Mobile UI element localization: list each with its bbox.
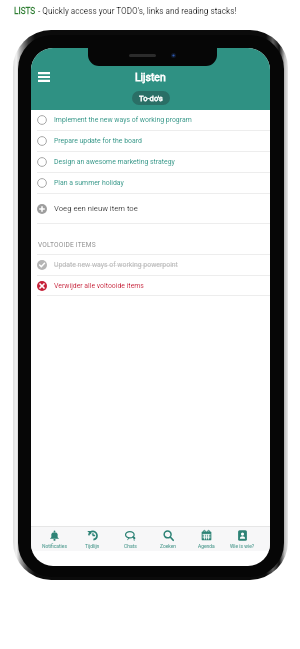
button[interactable]: Prepare update for the board [31,131,270,151]
staticText: Wie is wie? [230,543,255,549]
button[interactable]: Menu [33,66,55,88]
button[interactable]: Chats [111,526,149,551]
button[interactable]: Verwijder alle voltooide items [31,276,270,295]
staticText: Verwijder alle voltooide items [54,282,144,290]
staticText: LISTS [14,6,36,16]
staticText: Implement the new ways of working progra… [54,116,192,124]
staticText: Lijsten [135,71,166,83]
staticText: Notificaties [42,543,67,549]
button[interactable]: Tijdlijn [73,526,111,551]
button[interactable]: Wie is wie? [225,526,260,551]
staticText: Prepare update for the board [54,137,142,145]
staticText: Voeg een nieuw item toe [54,204,138,213]
staticText: Zoeken [160,543,176,549]
staticText: Chats [124,543,137,549]
staticText: Agenda [198,543,215,549]
button[interactable]: To-do's [132,91,170,105]
staticText: VOLTOOIDE ITEMS [38,241,96,249]
staticText: To-do's [139,94,163,103]
staticText: Design an awesome marketing strategy [54,158,175,166]
staticText: Tijdlijn [85,543,100,549]
button[interactable]: Update new ways of working powerpoint [31,255,270,275]
button[interactable]: Voeg een nieuw item toe [31,194,270,223]
staticText: Plan a summer holiday [54,179,124,187]
button[interactable]: Zoeken [149,526,187,551]
button[interactable]: Plan a summer holiday [31,173,270,193]
staticText: Update new ways of working powerpoint [54,261,178,269]
button[interactable]: Design an awesome marketing strategy [31,152,270,172]
staticText: - Quickly access your TODO's, links and … [36,6,237,16]
button[interactable]: Implement the new ways of working progra… [31,110,270,130]
button[interactable]: Notificaties [35,526,73,551]
button[interactable]: Agenda [187,526,225,551]
